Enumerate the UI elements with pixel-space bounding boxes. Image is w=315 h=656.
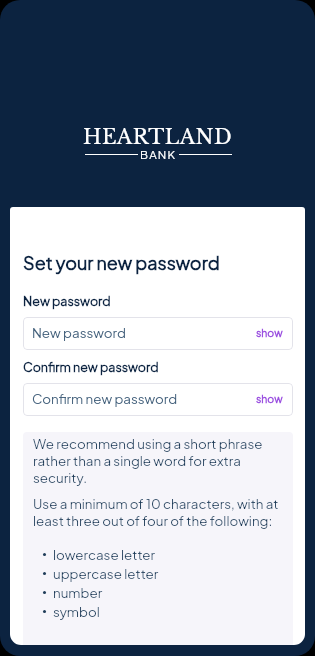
staticText: show bbox=[256, 392, 283, 405]
button[interactable]: Confirm new password bbox=[23, 383, 293, 416]
staticText: uppercase letter bbox=[53, 565, 159, 582]
staticText: show bbox=[256, 326, 283, 339]
staticText: We recommend using a short phrase rather… bbox=[33, 435, 283, 486]
button[interactable]: show bbox=[256, 326, 283, 339]
staticText: lowercase letter bbox=[53, 546, 156, 563]
staticText: symbol bbox=[53, 603, 100, 620]
staticText: New password bbox=[23, 293, 111, 309]
staticText: Use a minimum of 10 characters, with at … bbox=[33, 495, 283, 529]
staticText: HEARTLAND bbox=[83, 125, 233, 150]
staticText: Confirm new password bbox=[32, 390, 178, 407]
button[interactable]: show bbox=[256, 392, 283, 405]
staticText: Set your new password bbox=[23, 251, 220, 274]
staticText: number bbox=[53, 584, 103, 601]
staticText: Confirm new password bbox=[23, 359, 159, 375]
staticText: BANK bbox=[140, 147, 177, 161]
staticText: New password bbox=[32, 324, 126, 341]
button[interactable]: New password bbox=[23, 317, 293, 350]
